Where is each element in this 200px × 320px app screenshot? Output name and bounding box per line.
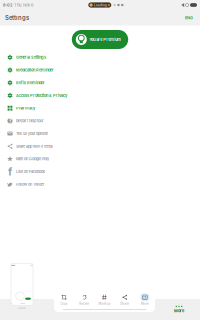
staticText: Pharmacy: [16, 106, 35, 110]
button[interactable]: Refill Reminder: [0, 76, 200, 89]
staticText: Crop: [61, 302, 68, 305]
button[interactable]: Share app with friends: [0, 140, 200, 153]
staticText: Markup: [98, 302, 110, 305]
button[interactable]: Screenshot preview: [11, 263, 33, 309]
staticText: ENG: [185, 15, 193, 20]
staticText: You are Premium: [89, 37, 121, 42]
staticText: More: [141, 302, 149, 305]
staticText: ?: [8, 117, 11, 124]
button[interactable]: More: [135, 293, 155, 305]
button[interactable]: ENG: [183, 13, 195, 22]
button[interactable]: Follow on Twitter: [0, 178, 200, 191]
staticText: ·: [125, 3, 126, 7]
staticText: ✕: [113, 3, 116, 7]
staticText: Restart help tour: [16, 118, 43, 123]
staticText: Rate on Google Play: [16, 157, 49, 161]
staticText: Loading: [94, 3, 107, 7]
staticText: Share: [120, 302, 129, 305]
staticText: More: [174, 308, 184, 313]
button[interactable]: Pharmacy: [0, 102, 200, 114]
button[interactable]: Rotate: [74, 293, 94, 305]
staticText: Tell us your opinion: [16, 131, 48, 136]
button[interactable]: Access Protection & Privacy: [0, 89, 200, 102]
button[interactable]: Rate on Google Play: [0, 153, 200, 165]
button[interactable]: More: [166, 300, 192, 318]
staticText: Share app with friends: [16, 144, 53, 149]
button[interactable]: Crop: [54, 293, 74, 305]
button[interactable]: Tell us your opinion: [0, 127, 200, 140]
staticText: f: [8, 165, 12, 178]
staticText: Settings: [5, 14, 29, 21]
button[interactable]: Share: [115, 293, 135, 305]
staticText: Like on Facebook: [16, 169, 45, 174]
button[interactable]: f: [0, 165, 200, 178]
staticText: General Settings: [16, 55, 46, 60]
button[interactable]: Medication Reminder: [0, 64, 200, 76]
staticText: Follow on Twitter: [16, 182, 44, 187]
staticText: Access Protection & Privacy: [16, 93, 67, 98]
button[interactable]: General Settings: [0, 51, 200, 64]
button[interactable]: You are Premium: [72, 30, 128, 49]
button[interactable]: Markup: [94, 293, 115, 305]
staticText: Medication Reminder: [16, 68, 54, 72]
staticText: Refill Reminder: [16, 80, 45, 85]
staticText: 8:02: [3, 3, 12, 7]
staticText: Thu, Nov 6: [12, 3, 33, 7]
staticText: Rotate: [79, 302, 89, 305]
button[interactable]: ?: [0, 114, 200, 127]
